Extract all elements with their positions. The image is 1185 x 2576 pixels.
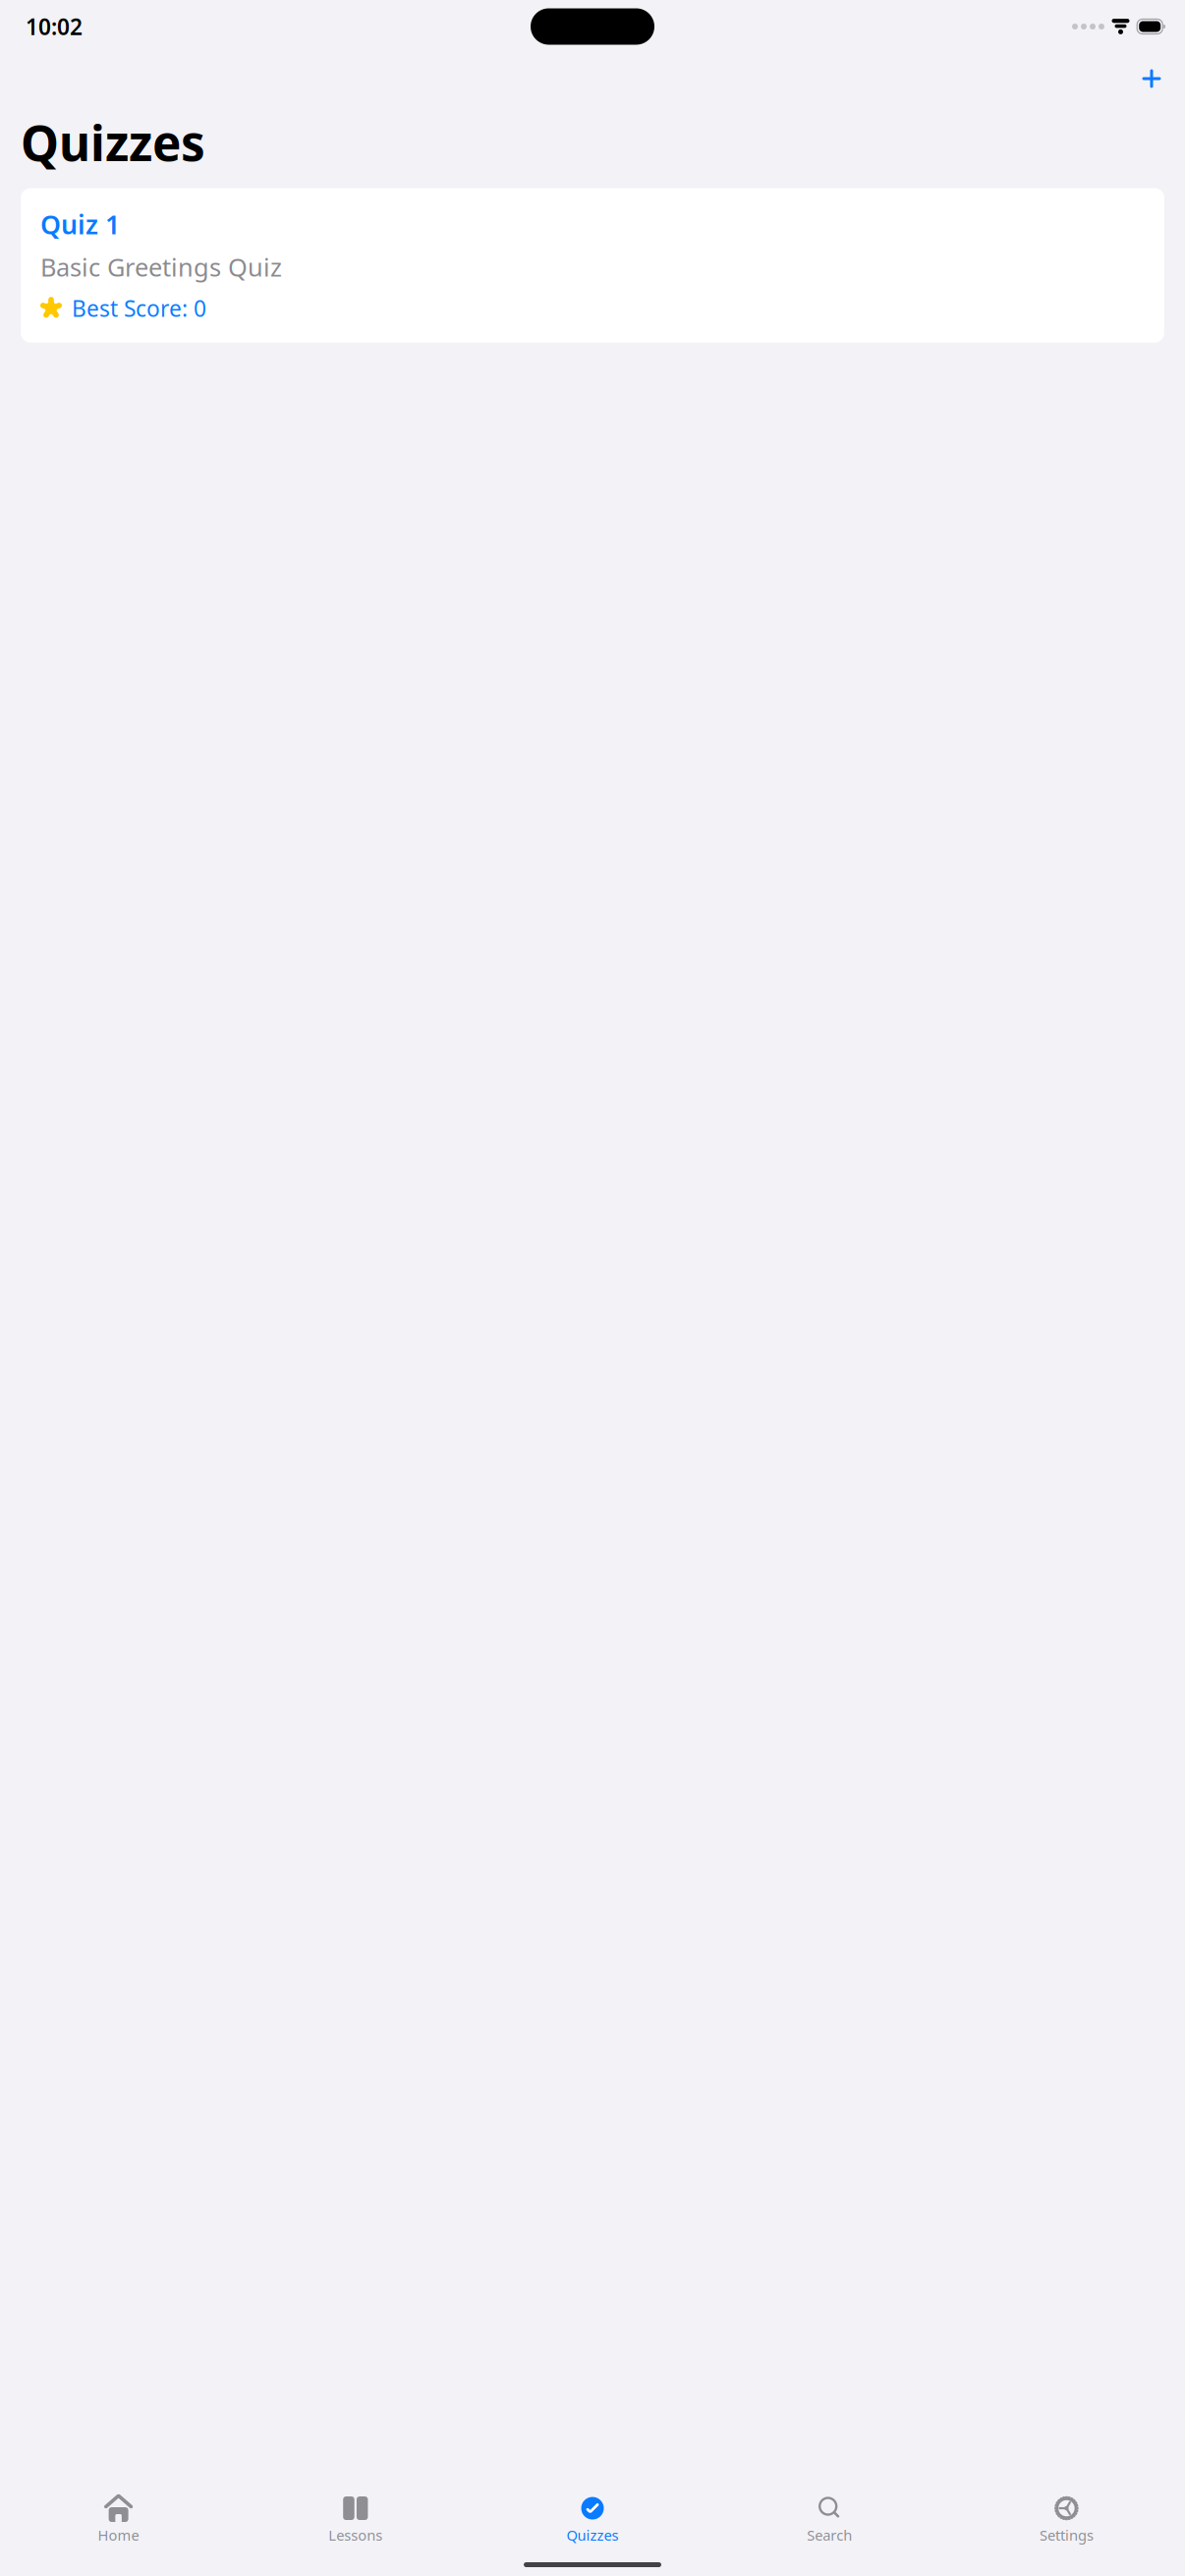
staticText: Home <box>98 2525 139 2545</box>
staticText: Search <box>807 2525 852 2545</box>
button[interactable]: Settings <box>948 2488 1185 2547</box>
staticText: 10:02 <box>26 12 83 41</box>
button[interactable]: Quiz 1 <box>21 188 1164 343</box>
staticText: Quiz 1 <box>40 207 120 242</box>
button[interactable]: Add quiz <box>1130 57 1173 100</box>
staticText: Quizzes <box>21 110 205 174</box>
button[interactable]: Search <box>711 2488 948 2547</box>
button[interactable]: Lessons <box>237 2488 474 2547</box>
button[interactable]: Quizzes <box>474 2488 711 2547</box>
staticText: Best Score: 0 <box>72 293 206 323</box>
staticText: Quizzes <box>566 2525 619 2545</box>
staticText: Settings <box>1039 2525 1094 2545</box>
staticText: Lessons <box>328 2525 383 2545</box>
button[interactable]: Home <box>0 2488 237 2547</box>
staticText: Basic Greetings Quiz <box>40 250 282 283</box>
